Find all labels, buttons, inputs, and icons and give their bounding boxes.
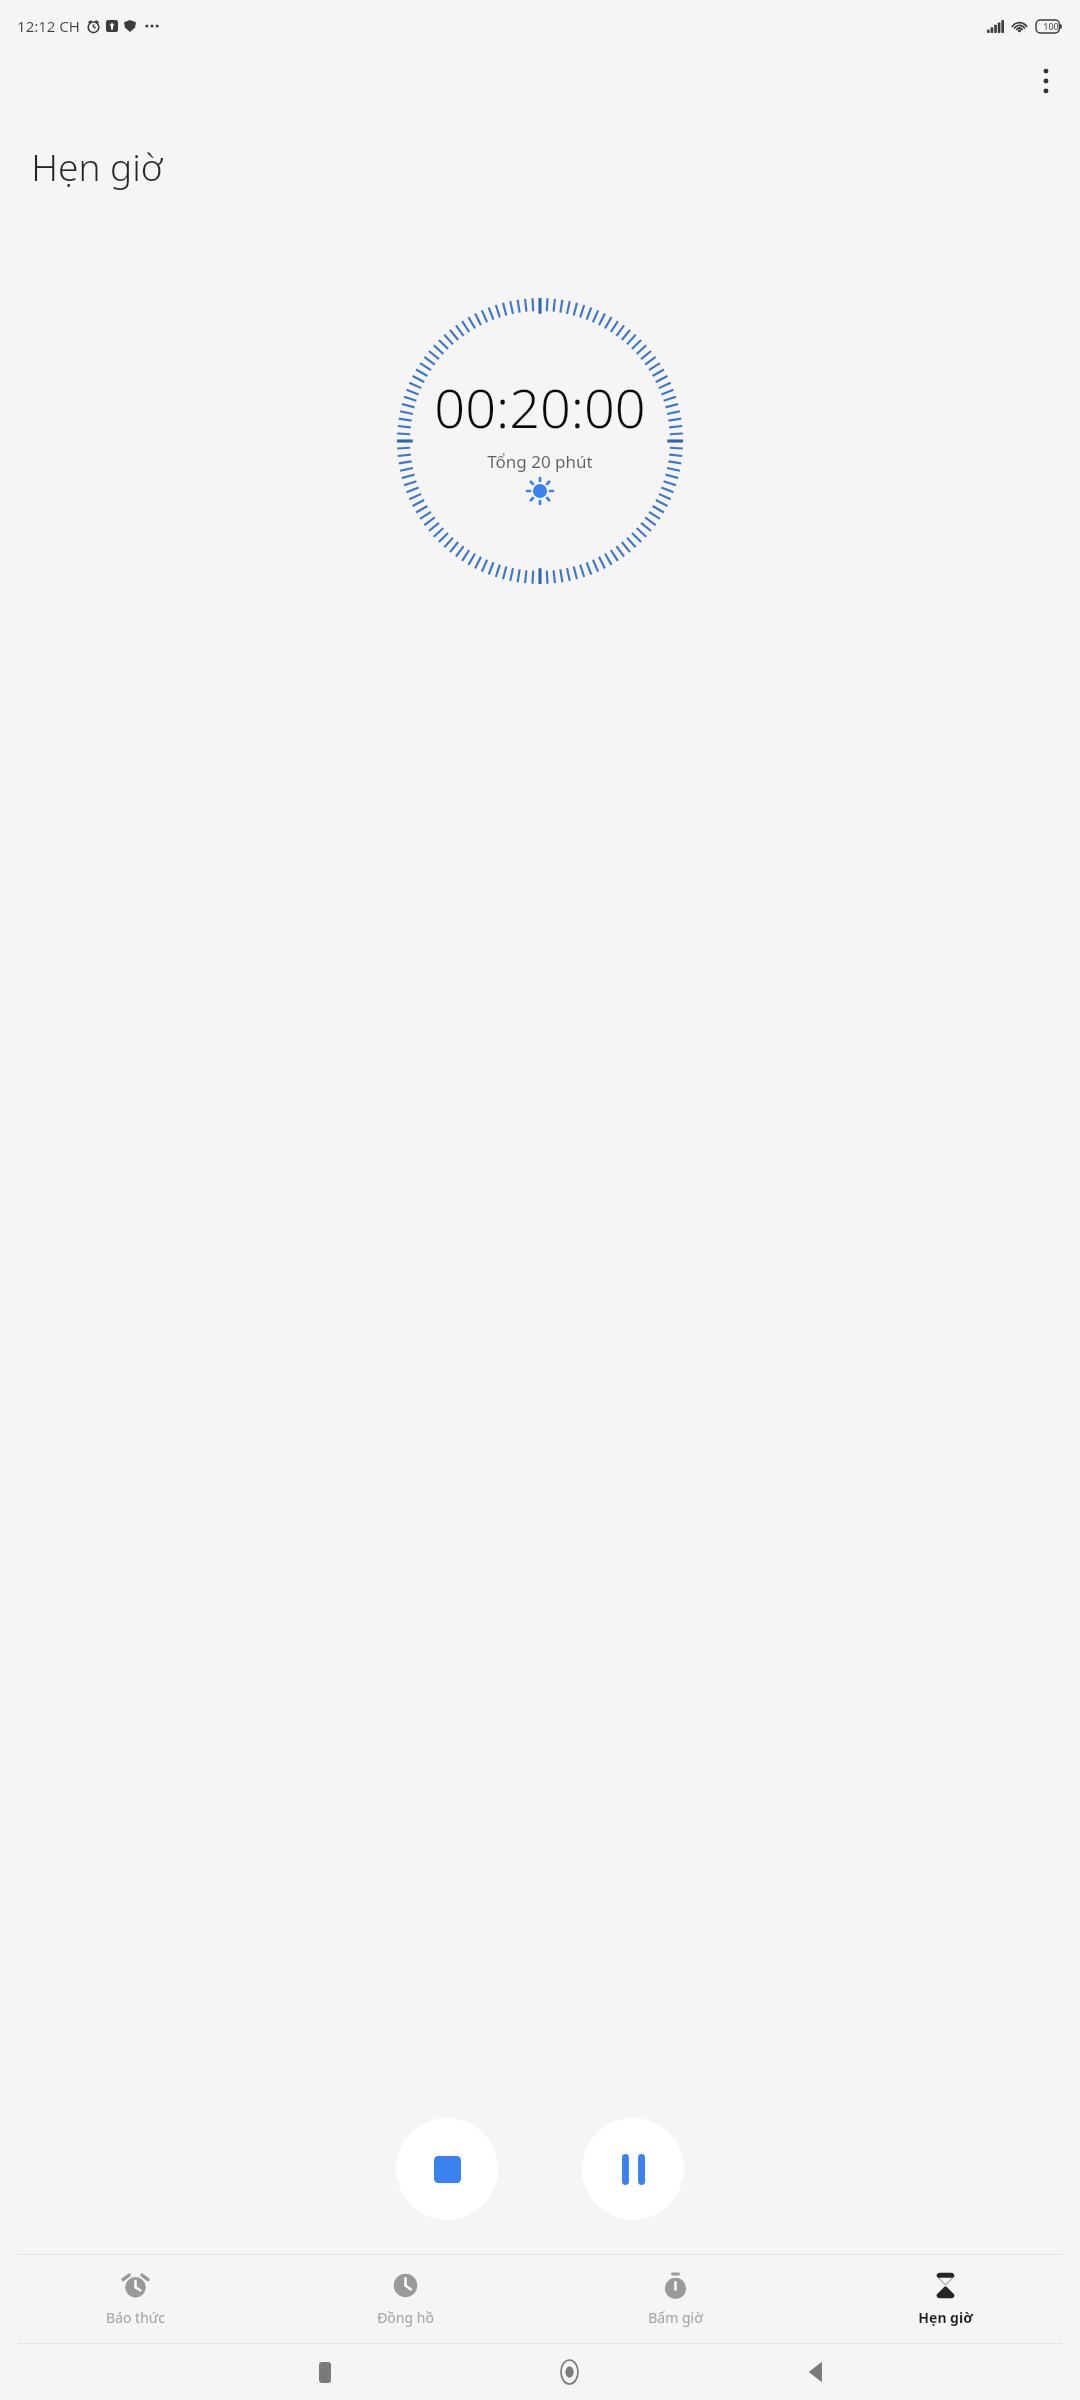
button[interactable]: Đồng hồ: [270, 2255, 540, 2343]
staticText: Báo thức: [106, 2308, 165, 2327]
button[interactable]: Home: [447, 2344, 692, 2400]
staticText: Đồng hồ: [377, 2308, 434, 2327]
button[interactable]: Pause: [582, 2118, 684, 2220]
staticText: 12:12 CH: [17, 16, 80, 36]
button[interactable]: Bấm giờ: [540, 2255, 810, 2343]
staticText: 00:20:00: [434, 370, 646, 444]
button[interactable]: Stop: [396, 2118, 498, 2220]
button[interactable]: Hẹn giờ: [810, 2255, 1080, 2343]
button[interactable]: Recents: [203, 2344, 447, 2400]
button[interactable]: Keep screen on: [518, 469, 562, 513]
button[interactable]: Back: [692, 2344, 937, 2400]
staticText: Tổng 20 phút: [487, 450, 593, 473]
staticText: Hẹn giờ: [31, 141, 163, 191]
staticText: Hẹn giờ: [918, 2308, 973, 2327]
button[interactable]: More options: [1022, 57, 1070, 105]
staticText: Bấm giờ: [648, 2308, 703, 2327]
button[interactable]: Báo thức: [0, 2255, 270, 2343]
staticText: 100: [1043, 20, 1059, 32]
